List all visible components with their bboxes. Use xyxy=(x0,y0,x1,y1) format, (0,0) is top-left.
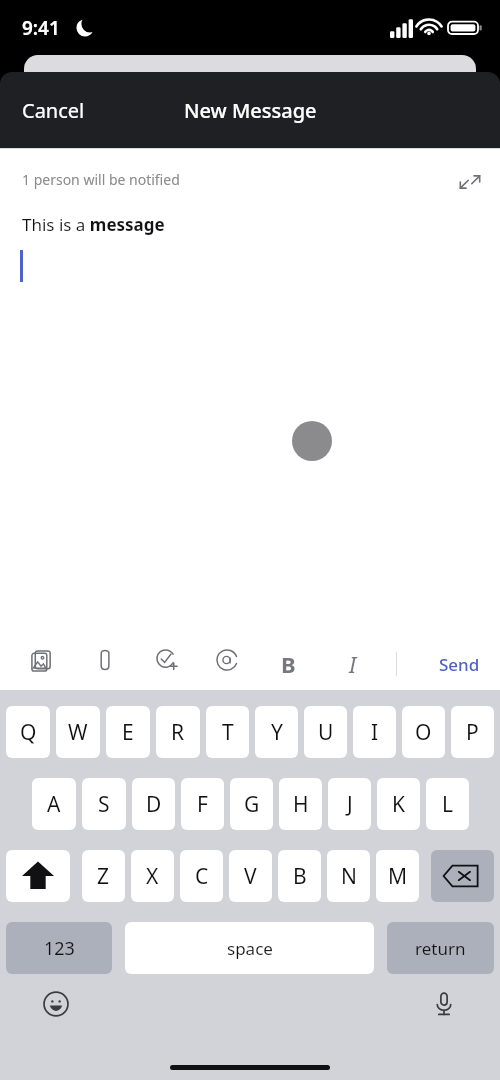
staticText: C xyxy=(195,862,209,891)
button[interactable]: I xyxy=(353,706,396,758)
button[interactable]: E xyxy=(106,706,150,758)
staticText: 123 xyxy=(44,936,75,961)
staticText: 9:41 xyxy=(22,15,60,41)
staticText: Cancel xyxy=(22,97,85,124)
button[interactable]: C xyxy=(180,850,223,902)
button[interactable]: U xyxy=(304,706,347,758)
staticText: H xyxy=(293,790,309,819)
button[interactable]: O xyxy=(402,706,445,758)
staticText: J xyxy=(347,790,353,819)
button[interactable]: Task xyxy=(145,638,189,682)
staticText: Y xyxy=(271,718,283,747)
button[interactable]: V xyxy=(229,850,272,902)
button[interactable]: Shift xyxy=(6,850,70,902)
button[interactable]: Dictation xyxy=(422,982,466,1026)
staticText: F xyxy=(197,790,208,819)
staticText: O xyxy=(415,718,432,747)
staticText: S xyxy=(98,790,110,819)
button[interactable]: Send xyxy=(419,643,500,686)
button[interactable]: J xyxy=(328,778,371,830)
button[interactable]: R xyxy=(156,706,200,758)
button[interactable]: W xyxy=(56,706,100,758)
staticText: L xyxy=(442,790,454,819)
staticText: B xyxy=(293,862,307,891)
staticText: P xyxy=(466,718,479,747)
button[interactable]: S xyxy=(82,778,126,830)
staticText: B xyxy=(281,649,296,679)
staticText: X xyxy=(146,862,159,891)
staticText: W xyxy=(68,718,88,747)
button[interactable]: X xyxy=(131,850,174,902)
button[interactable]: return xyxy=(387,922,494,974)
button[interactable]: Photos xyxy=(20,638,64,682)
button[interactable]: G xyxy=(230,778,273,830)
staticText: Q xyxy=(20,718,37,747)
staticText: space xyxy=(227,937,273,960)
button[interactable]: B xyxy=(278,850,321,902)
button[interactable]: A xyxy=(32,778,76,830)
button[interactable]: Cancel xyxy=(0,83,107,138)
staticText: E xyxy=(122,718,134,747)
button[interactable]: D xyxy=(132,778,175,830)
button[interactable]: K xyxy=(377,778,420,830)
staticText: Send xyxy=(439,653,480,676)
button[interactable]: M xyxy=(376,850,419,902)
staticText: New Message xyxy=(184,97,317,124)
staticText: U xyxy=(318,718,334,747)
staticText: K xyxy=(392,790,405,819)
button[interactable]: Backspace xyxy=(431,850,494,902)
staticText: A xyxy=(47,790,61,819)
button[interactable]: T xyxy=(206,706,249,758)
staticText: 1 person will be notified xyxy=(22,170,180,189)
button[interactable]: N xyxy=(327,850,370,902)
button[interactable]: P xyxy=(451,706,494,758)
staticText: R xyxy=(171,718,185,747)
button[interactable]: F xyxy=(181,778,224,830)
button[interactable]: Mention xyxy=(205,638,249,682)
staticText: I xyxy=(371,718,379,747)
staticText: G xyxy=(244,790,260,819)
staticText: T xyxy=(222,718,234,747)
button[interactable]: Q xyxy=(6,706,50,758)
staticText: N xyxy=(341,862,357,891)
button[interactable]: Y xyxy=(255,706,298,758)
staticText: This is a message xyxy=(22,213,165,236)
staticText: D xyxy=(146,790,162,819)
button[interactable]: Bold xyxy=(266,642,310,686)
button[interactable]: 123 xyxy=(6,922,112,974)
button[interactable]: H xyxy=(279,778,322,830)
button[interactable]: Attach xyxy=(84,638,128,682)
staticText: I xyxy=(349,649,357,679)
staticText: Z xyxy=(97,862,110,891)
button[interactable]: Emoji xyxy=(34,982,78,1026)
staticText: return xyxy=(415,937,466,960)
button[interactable]: Collapse xyxy=(448,160,492,204)
staticText: V xyxy=(244,862,257,891)
button[interactable]: Z xyxy=(82,850,125,902)
button[interactable]: space xyxy=(125,922,374,974)
staticText: M xyxy=(388,862,408,891)
button[interactable]: Italic xyxy=(331,642,375,686)
button[interactable]: L xyxy=(426,778,469,830)
